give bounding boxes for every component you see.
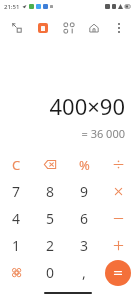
button[interactable]: Calculator <box>32 17 54 39</box>
staticText: % <box>79 156 90 174</box>
staticText: 3 <box>80 236 89 255</box>
button[interactable]: 5 <box>33 205 67 232</box>
staticText: = 36 000 <box>81 126 125 141</box>
staticText: 21:51 <box>4 3 20 11</box>
button[interactable]: 9 <box>67 178 101 205</box>
staticText: 8 <box>46 182 55 201</box>
button[interactable]: , <box>67 259 101 286</box>
staticText: 5 <box>46 209 55 228</box>
button[interactable]: More options <box>109 18 129 38</box>
button[interactable]: Scientific functions <box>0 259 33 286</box>
button[interactable]: 4 <box>0 205 33 232</box>
button[interactable]: 7 <box>0 178 33 205</box>
button[interactable]: Expand <box>6 17 28 39</box>
button[interactable]: 1 <box>0 232 33 259</box>
staticText: 7 <box>12 182 21 201</box>
button[interactable]: 0 <box>33 259 67 286</box>
staticText: 6 <box>80 209 89 228</box>
staticText: 1 <box>12 236 21 255</box>
staticText: 4 <box>12 209 21 228</box>
button[interactable]: Plus <box>101 232 135 259</box>
staticText: 9 <box>80 182 89 201</box>
button[interactable]: Divide <box>101 151 135 178</box>
button[interactable]: Minus <box>101 205 135 232</box>
button[interactable]: Home <box>83 17 105 39</box>
staticText: C <box>12 156 21 174</box>
staticText: 2 <box>46 236 55 255</box>
button[interactable]: Equals <box>105 260 131 286</box>
staticText: , <box>82 263 86 282</box>
button[interactable]: Backspace <box>33 151 67 178</box>
staticText: 0 <box>46 263 55 282</box>
staticText: 400×90 <box>49 91 125 121</box>
button[interactable]: 2 <box>33 232 67 259</box>
button[interactable]: 6 <box>67 205 101 232</box>
button[interactable]: 3 <box>67 232 101 259</box>
button[interactable]: C <box>0 151 33 178</box>
button[interactable]: 8 <box>33 178 67 205</box>
button[interactable]: % <box>67 151 101 178</box>
button[interactable]: Converter <box>58 17 80 39</box>
button[interactable]: Multiply <box>101 178 135 205</box>
